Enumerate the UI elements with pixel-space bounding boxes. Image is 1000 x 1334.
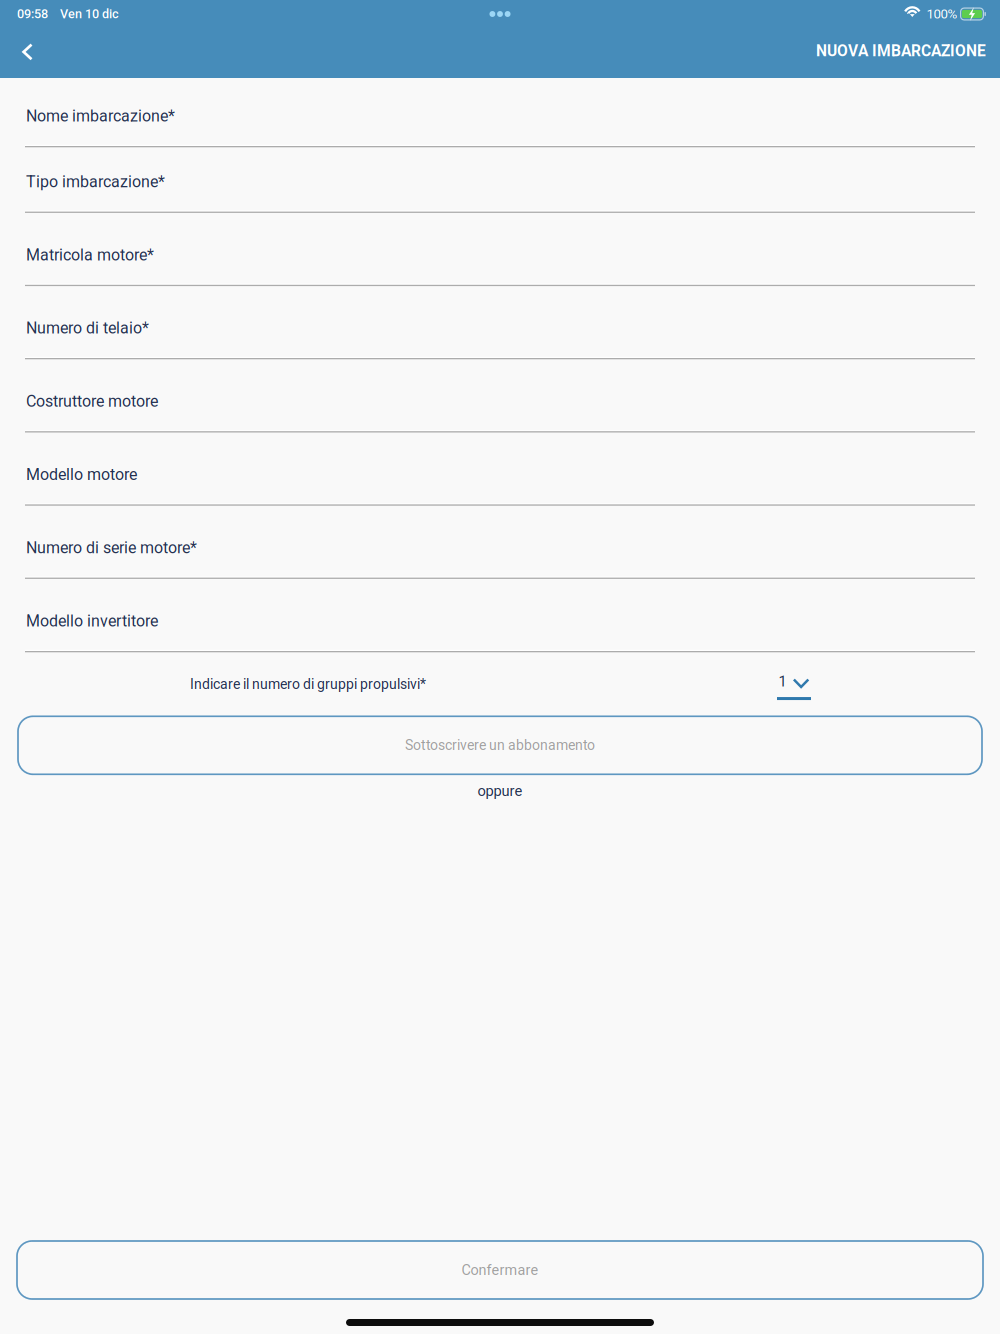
staticText: Modello motore [26,465,137,484]
staticText: 09:58 [17,7,48,21]
staticText: Sottoscrivere un abbonamento [405,737,595,753]
staticText: NUOVA IMBARCAZIONE [816,42,986,60]
button[interactable]: Modello invertitore [0,579,1000,652]
button[interactable]: Matricola motore* [0,213,1000,286]
staticText: Numero di serie motore* [26,538,197,557]
staticText: Numero di telaio* [26,319,149,338]
staticText: Ven 10 dic [60,7,119,21]
staticText: Costruttore motore [26,392,158,411]
button[interactable]: Costruttore motore [0,359,1000,432]
button[interactable]: Tipo imbarcazione* [0,147,1000,213]
staticText: Modello invertitore [26,612,158,631]
button[interactable]: Numero di gruppi propulsivi [764,668,824,700]
staticText: Matricola motore* [26,246,154,264]
staticText: Indicare il numero di gruppi propulsivi* [190,676,426,692]
staticText: oppure [477,782,522,799]
button[interactable]: Modello motore [0,432,1000,506]
staticText: Tipo imbarcazione* [26,172,165,191]
button[interactable]: Nome imbarcazione* [0,78,1000,147]
button[interactable]: Sottoscrivere un abbonamento [18,716,982,774]
button[interactable]: Numero di serie motore* [0,506,1000,579]
staticText: Nome imbarcazione* [26,107,175,126]
staticText: 100% [927,6,958,22]
staticText: 1 [778,673,786,690]
button[interactable]: Numero di telaio* [0,286,1000,359]
staticText: Confermare [461,1262,538,1278]
button[interactable]: Indietro [0,28,53,78]
button[interactable]: Confermare [17,1241,983,1299]
